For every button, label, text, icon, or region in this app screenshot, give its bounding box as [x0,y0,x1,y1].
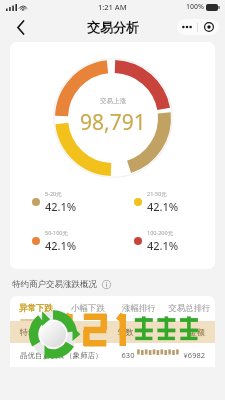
button[interactable]: Close [198,19,219,35]
staticText: 5-20元 [45,190,62,198]
staticText: 100% [186,2,204,12]
button[interactable]: 异常下跌 [10,296,62,321]
staticText: 98,791 [80,108,146,137]
staticText: 异常下跌 [19,303,53,314]
staticText: 交易总排行 [168,303,211,314]
staticText: 晶优自选快餐（象师店） [20,351,104,360]
staticText: 100-200元 [147,229,174,237]
staticText: 42.1% [45,199,77,214]
staticText: 21-50元 [147,190,167,198]
button[interactable]: 100-200元 [112,229,215,253]
button[interactable]: 小幅下跌 [62,296,113,321]
button[interactable]: Back [10,16,32,38]
staticText: 小幅下跌 [71,303,105,314]
button[interactable]: 晶优自选快餐（象师店） [10,343,215,367]
button[interactable]: 涨幅排行 [113,296,164,321]
staticText: 42.1% [147,238,179,253]
button[interactable]: 50-100元 [10,229,112,253]
staticText: 1:21 AM [98,2,127,12]
staticText: 交易分析 [87,19,139,35]
staticText: 特约商户交易涨跌概况 [12,279,97,290]
staticText: 42.1% [45,238,77,253]
button[interactable]: 交易总排行 [164,296,215,321]
staticText: 特约商户 [20,327,99,337]
staticText: 42.1% [147,199,179,214]
button[interactable]: More options [177,19,197,35]
button[interactable]: Info [100,278,112,290]
staticText: 涨幅排行 [122,303,156,314]
staticText: 笔数 [99,327,152,337]
staticText: ¥6982 [152,350,205,360]
button[interactable]: 21-50元 [112,190,215,214]
staticText: 630 [104,350,152,360]
staticText: 交易上涨 [100,97,126,105]
staticText: 金额 [152,327,205,337]
button[interactable]: 5-20元 [10,190,112,214]
staticText: 50-100元 [45,229,69,237]
